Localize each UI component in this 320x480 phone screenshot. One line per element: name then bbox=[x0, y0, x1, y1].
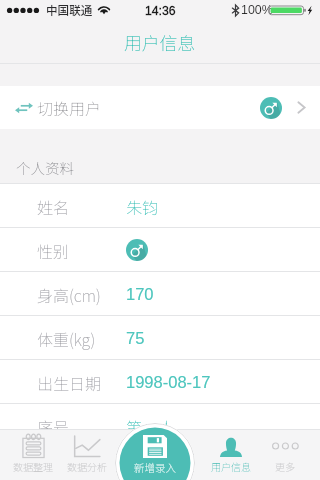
button[interactable]: 切换用户 bbox=[0, 86, 320, 129]
button[interactable]: 数据整理 bbox=[6, 429, 60, 480]
staticText: 出生日期 bbox=[37, 371, 102, 394]
staticText: 性别 bbox=[37, 239, 70, 262]
staticText: 个人资料 bbox=[16, 157, 74, 178]
staticText: 中国联通 bbox=[46, 2, 93, 19]
staticText: 序号 bbox=[37, 415, 70, 438]
staticText: 用户信息 bbox=[124, 29, 196, 55]
staticText: 朱钧 bbox=[126, 195, 159, 218]
button[interactable]: 身高(cm) bbox=[0, 272, 320, 316]
button[interactable]: 性别 bbox=[0, 228, 320, 272]
staticText: 切换用户 bbox=[37, 96, 102, 119]
button[interactable]: 体重(kg) bbox=[0, 316, 320, 360]
button[interactable]: 序号 bbox=[0, 404, 320, 448]
staticText: 数据分析 bbox=[67, 459, 107, 473]
button[interactable]: 新增录入 bbox=[115, 423, 195, 480]
staticText: 体重(kg) bbox=[37, 327, 96, 350]
staticText: 1998-08-17 bbox=[126, 373, 211, 391]
staticText: 身高(cm) bbox=[37, 283, 101, 306]
button[interactable]: 姓名 bbox=[0, 184, 320, 228]
staticText: 姓名 bbox=[37, 195, 70, 218]
staticText: 更多 bbox=[275, 459, 295, 473]
staticText: 新增录入 bbox=[134, 460, 176, 475]
button[interactable]: 数据分析 bbox=[60, 429, 114, 480]
staticText: 用户信息 bbox=[211, 459, 251, 473]
button[interactable]: 出生日期 bbox=[0, 360, 320, 404]
staticText: 170 bbox=[126, 285, 154, 303]
staticText: 数据整理 bbox=[13, 459, 53, 473]
button[interactable]: 更多 bbox=[258, 429, 312, 480]
staticText: 14:36 bbox=[145, 4, 176, 18]
staticText: 第一人 bbox=[126, 415, 175, 438]
button[interactable]: 用户信息 bbox=[204, 429, 258, 480]
staticText: 75 bbox=[126, 329, 145, 347]
staticText: 100% bbox=[241, 3, 273, 17]
